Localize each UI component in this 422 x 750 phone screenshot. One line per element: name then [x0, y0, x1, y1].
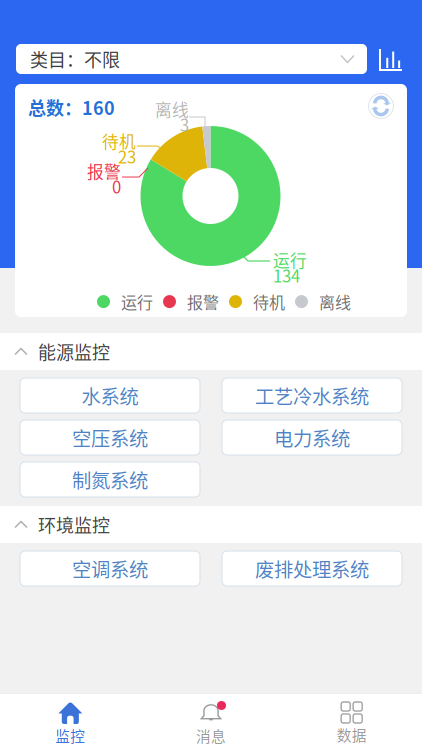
staticText: 待机 [102, 129, 136, 153]
button[interactable]: 能源监控 [0, 333, 422, 370]
button[interactable]: 环境监控 [0, 506, 422, 543]
button[interactable]: Refresh [367, 92, 395, 120]
button[interactable]: 类目：不限 [16, 44, 367, 74]
staticText: 待机 [253, 290, 285, 313]
staticText: 消息 [196, 725, 226, 746]
staticText: 制氮系统 [72, 465, 148, 493]
button[interactable]: 电力系统 [222, 420, 402, 455]
button[interactable]: 水系统 [20, 378, 200, 413]
staticText: 报警 [187, 290, 219, 313]
staticText: 空调系统 [72, 554, 148, 582]
button[interactable]: 消息 [141, 693, 281, 750]
staticText: 空压系统 [72, 423, 148, 451]
staticText: 工艺冷水系统 [255, 381, 369, 409]
staticText: 水系统 [81, 381, 138, 409]
button[interactable]: 数据 [281, 693, 422, 750]
staticText: 总数：160 [28, 94, 115, 120]
staticText: 能源监控 [38, 338, 110, 365]
staticText: 3 [180, 112, 189, 136]
staticText: 运行 [121, 290, 153, 313]
button[interactable]: 工艺冷水系统 [222, 378, 402, 413]
staticText: 电力系统 [274, 423, 350, 451]
staticText: 监控 [55, 725, 85, 746]
staticText: 134 [273, 263, 300, 287]
staticText: 0 [112, 174, 121, 198]
staticText: 23 [118, 144, 136, 168]
staticText: 离线 [155, 97, 189, 121]
staticText: 离线 [319, 290, 351, 313]
button[interactable]: 空压系统 [20, 420, 200, 455]
staticText: 类目：不限 [30, 46, 120, 72]
staticText: 报警 [87, 159, 121, 183]
button[interactable]: Statistics [380, 49, 402, 70]
staticText: 运行 [273, 248, 307, 272]
staticText: 数据 [337, 724, 367, 745]
button[interactable]: 废排处理系统 [222, 551, 402, 586]
button[interactable]: 空调系统 [20, 551, 200, 586]
staticText: 废排处理系统 [255, 554, 369, 582]
button[interactable]: 制氮系统 [20, 462, 200, 497]
staticText: 环境监控 [38, 511, 110, 538]
button[interactable]: 监控 [0, 693, 141, 750]
